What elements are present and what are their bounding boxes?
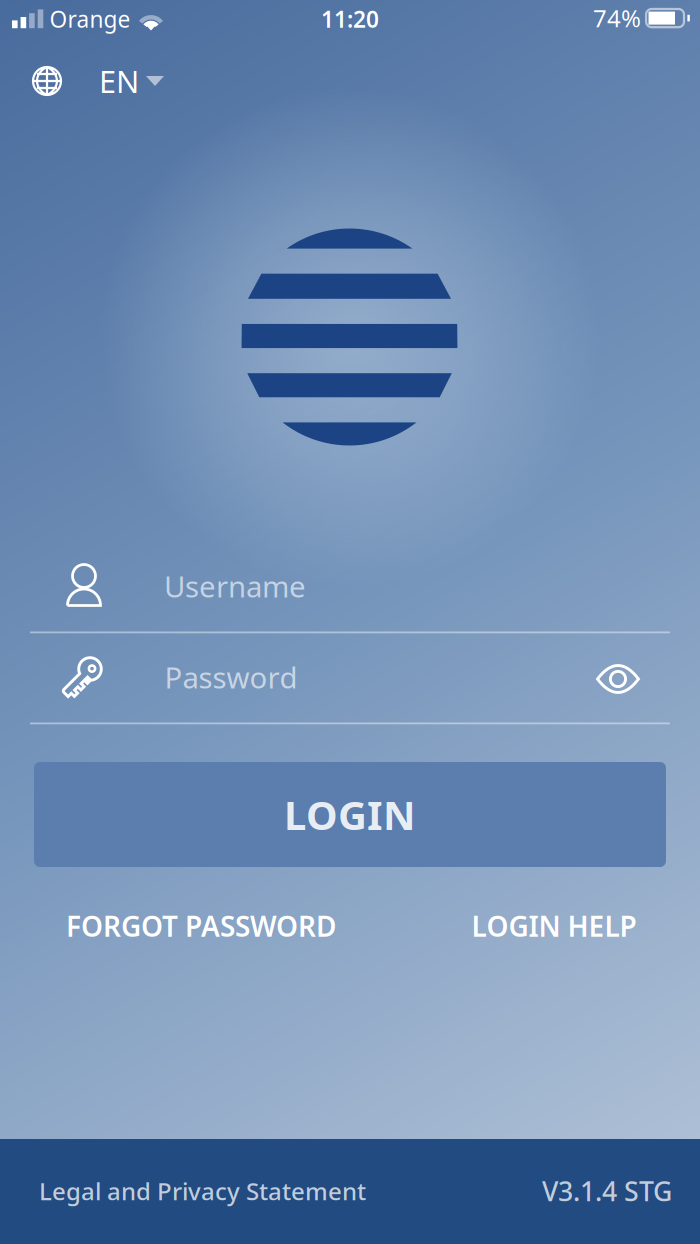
staticText: Legal and Privacy Statement xyxy=(39,1175,366,1207)
staticText: Password xyxy=(164,657,297,696)
staticText: LOGIN xyxy=(284,788,416,841)
button[interactable]: Legal and Privacy Statement xyxy=(39,1161,379,1221)
button[interactable]: FORGOT PASSWORD xyxy=(51,899,351,953)
button[interactable]: Show password xyxy=(586,649,650,709)
button[interactable]: Language: EN xyxy=(20,53,180,111)
button[interactable]: LOGIN HELP xyxy=(454,899,654,953)
staticText: LOGIN HELP xyxy=(471,907,636,945)
staticText: V3.1.4 STG xyxy=(542,1173,672,1209)
staticText: EN xyxy=(99,61,139,101)
staticText: Orange xyxy=(49,4,130,34)
staticText: Username xyxy=(164,566,306,605)
button[interactable]: LOGIN xyxy=(34,762,666,867)
staticText: FORGOT PASSWORD xyxy=(66,907,336,945)
staticText: 74% xyxy=(593,2,641,34)
staticText: 11:20 xyxy=(321,4,379,34)
